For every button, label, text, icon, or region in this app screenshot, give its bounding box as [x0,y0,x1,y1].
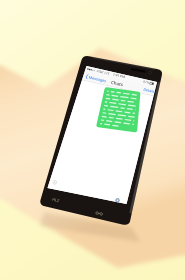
other: Phone showing a text message conversatio… [0,0,185,280]
